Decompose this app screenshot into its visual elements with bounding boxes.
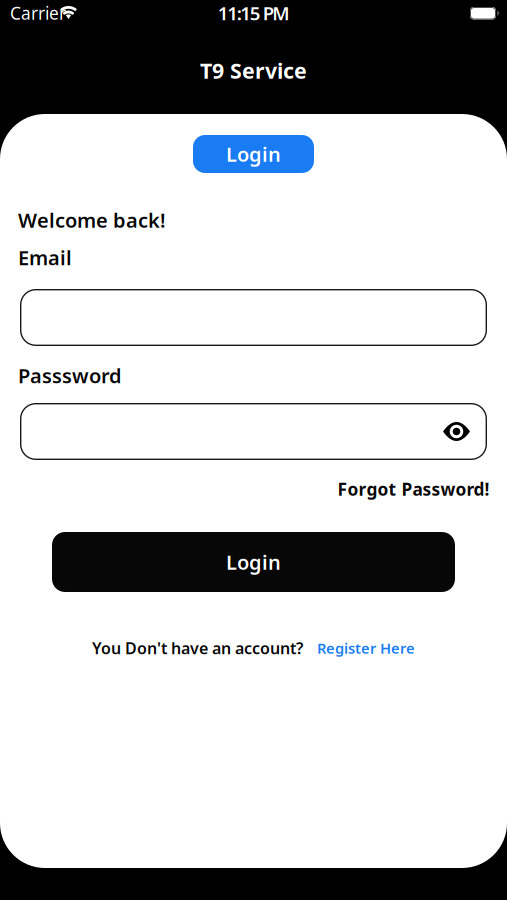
staticText: You Don't have an account? bbox=[92, 637, 303, 659]
staticText: Email bbox=[18, 244, 72, 271]
button[interactable]: Login bbox=[193, 135, 314, 173]
staticText: Forgot Password! bbox=[337, 477, 489, 500]
button[interactable]: Register Here bbox=[317, 638, 415, 658]
staticText: Carrier bbox=[10, 1, 66, 24]
staticText: Login bbox=[226, 141, 281, 167]
staticText: Login bbox=[226, 549, 281, 575]
staticText: Register Here bbox=[317, 638, 415, 658]
staticText: Welcome back! bbox=[18, 207, 166, 233]
button[interactable]: Forgot Password! bbox=[337, 479, 489, 499]
staticText: 11:15 PM bbox=[218, 1, 289, 25]
staticText: Passsword bbox=[18, 362, 122, 389]
staticText: T9 Service bbox=[200, 56, 307, 85]
button[interactable]: Login bbox=[52, 532, 455, 592]
button[interactable]: Show password bbox=[443, 422, 470, 441]
